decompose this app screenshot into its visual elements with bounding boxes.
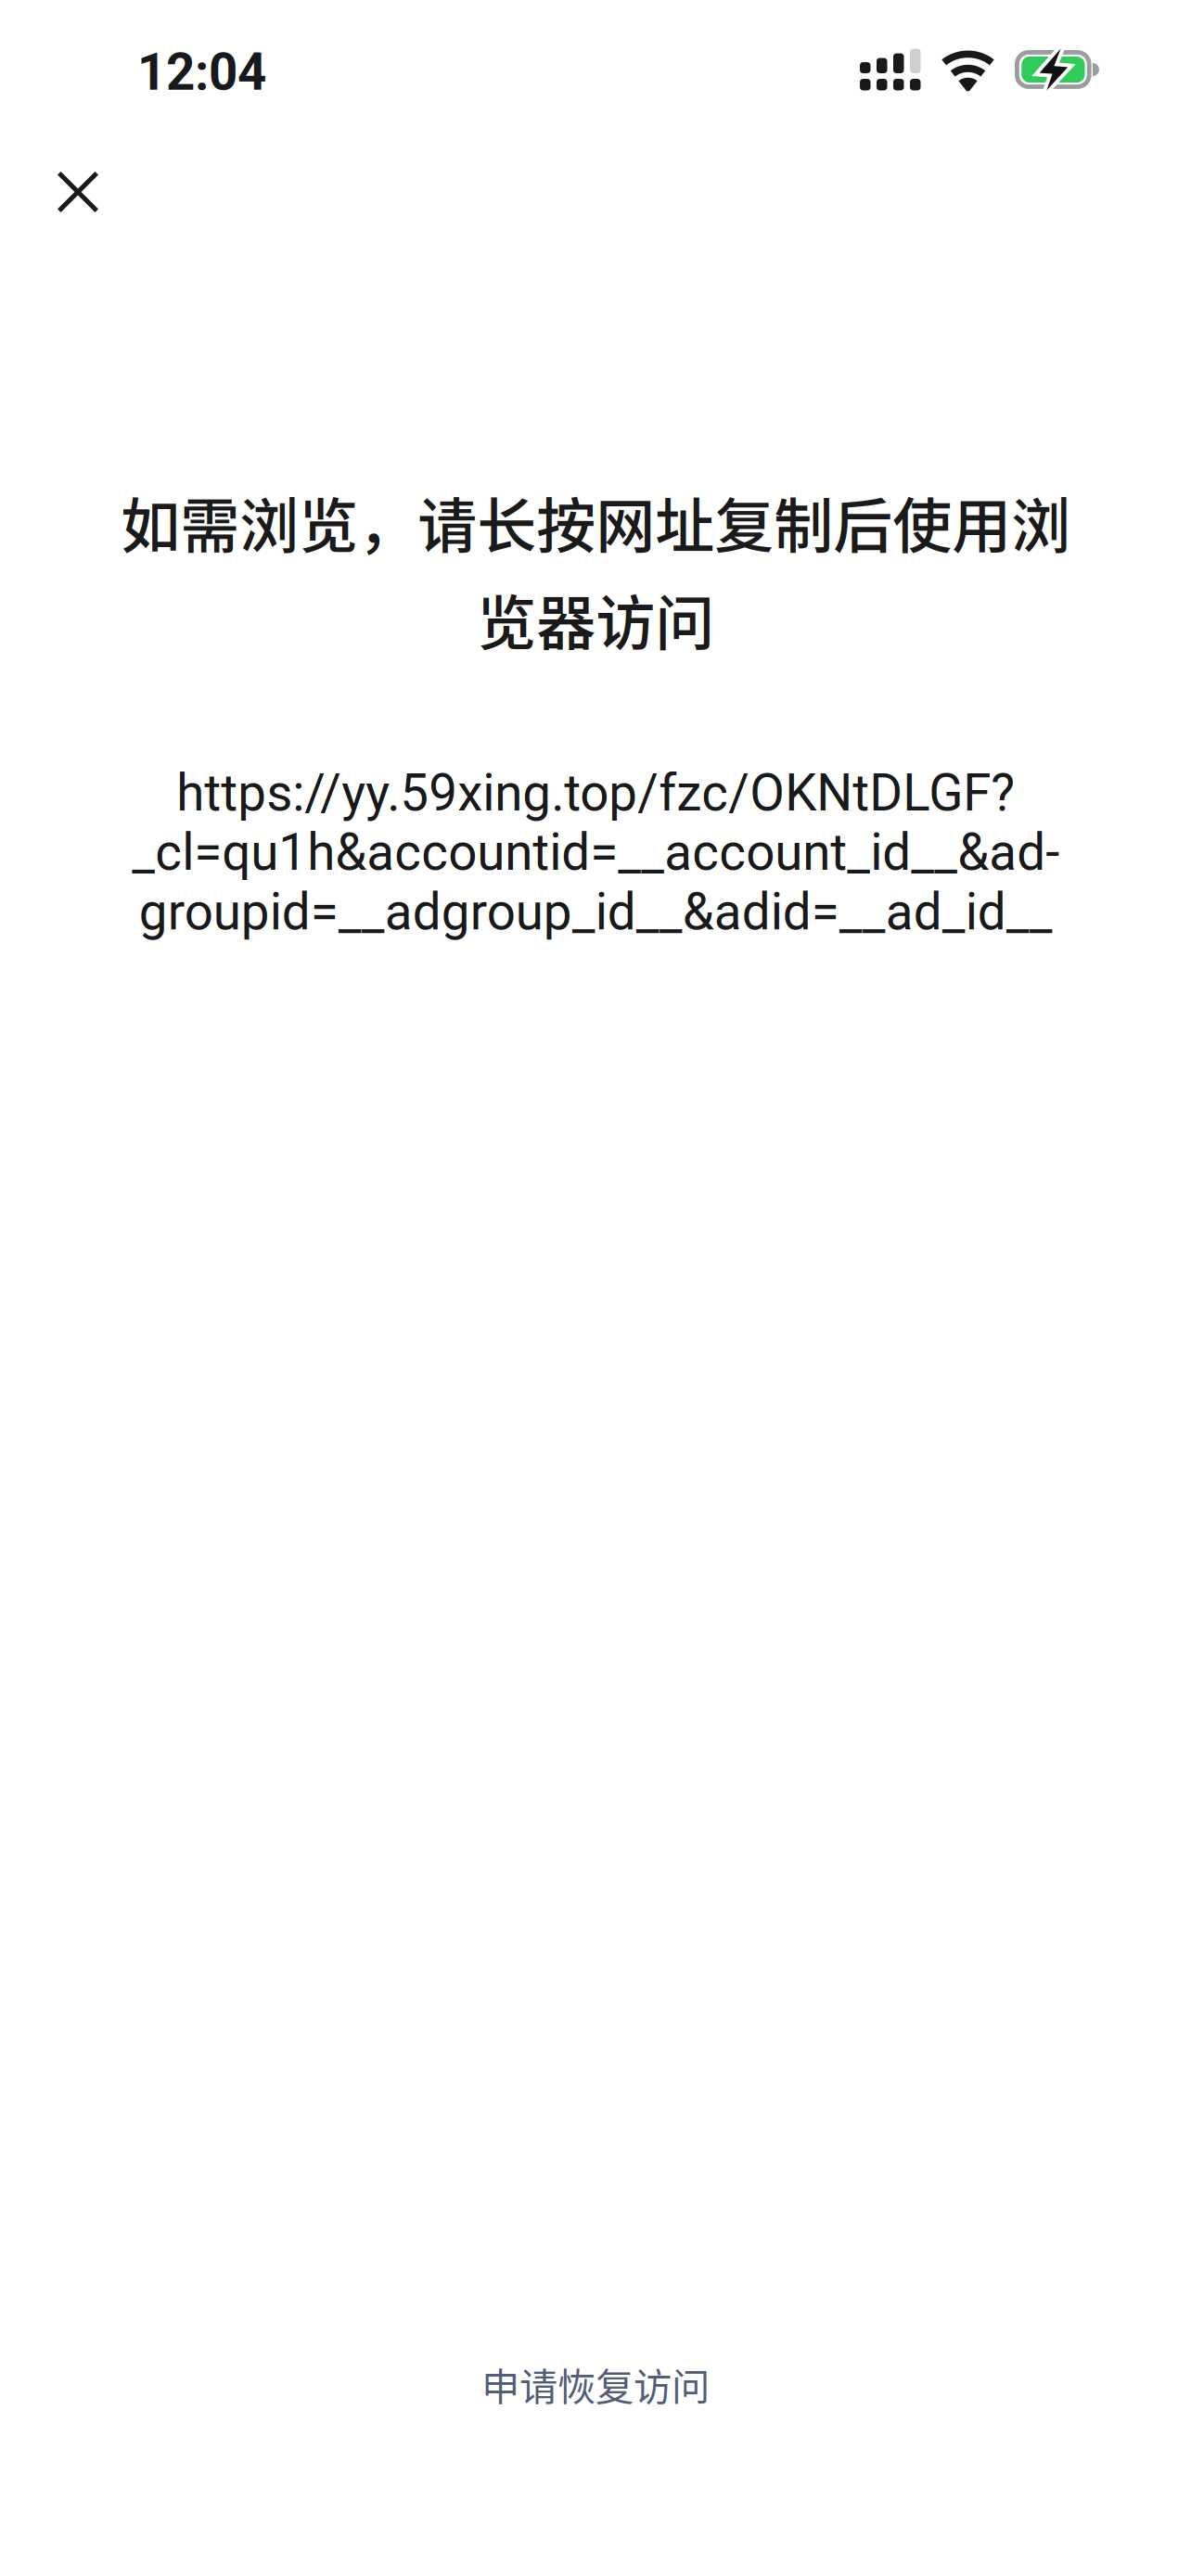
staticText: 申请恢复访问 [481, 2356, 710, 2412]
button[interactable]: https://yy.59xing.top/fzc/OKNtDLGF? _cl=… [72, 728, 1119, 977]
staticText: 12:04 [137, 43, 266, 102]
staticText: https://yy.59xing.top/fzc/OKNtDLGF? _cl=… [132, 763, 1059, 942]
button[interactable]: 申请恢复访问 [444, 2336, 747, 2432]
staticText: 如需浏览，请长按网址复制后使用浏 览器访问 [121, 478, 1070, 661]
button[interactable]: Close [0, 139, 130, 245]
